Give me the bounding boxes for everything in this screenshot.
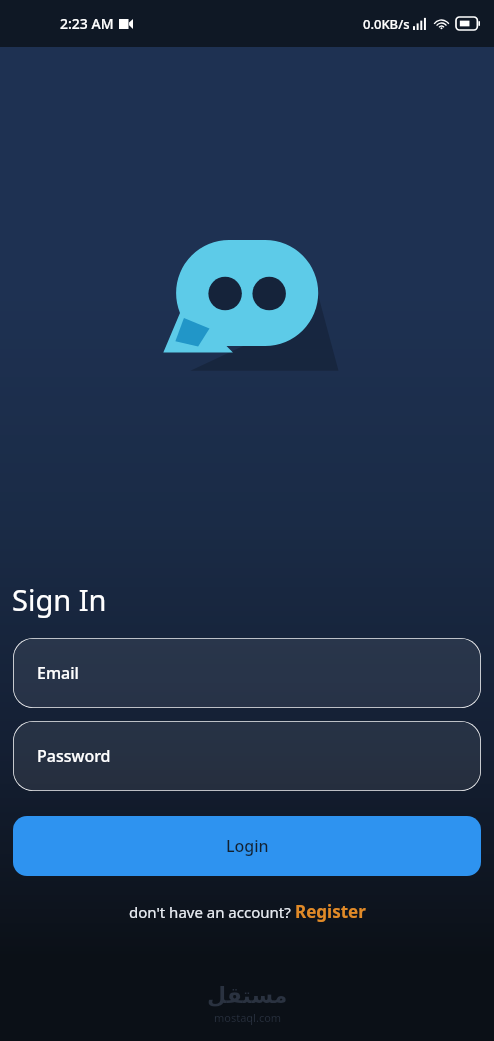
staticText: Register xyxy=(295,900,366,923)
staticText: Login xyxy=(226,835,269,857)
button[interactable]: Register xyxy=(295,900,366,923)
staticText: Password xyxy=(37,745,111,767)
staticText: 2:23 AM xyxy=(60,14,114,33)
button[interactable]: Email xyxy=(13,638,481,708)
staticText: don't have an account? xyxy=(129,902,295,922)
button[interactable]: Password xyxy=(13,721,481,791)
button[interactable]: Login xyxy=(13,816,481,876)
staticText: 0.0KB/s xyxy=(363,15,410,33)
staticText: مستقل xyxy=(207,983,288,1009)
staticText: mostaql.com xyxy=(214,1010,282,1025)
staticText: Sign In xyxy=(12,580,107,619)
staticText: Email xyxy=(37,662,79,684)
